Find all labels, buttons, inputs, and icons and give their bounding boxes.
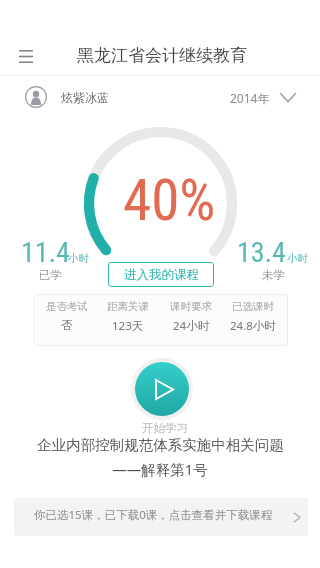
staticText: 未学: [262, 268, 285, 282]
button[interactable]: Menu: [10, 40, 42, 72]
staticText: 否: [61, 318, 73, 332]
staticText: 炫紫冰蓝: [61, 90, 109, 105]
staticText: 24小时: [173, 318, 210, 334]
button[interactable]: 进入我的课程: [108, 262, 214, 287]
button[interactable]: 开始学习: [131, 358, 193, 420]
staticText: 123天: [112, 318, 144, 334]
staticText: 11.4: [21, 236, 70, 269]
staticText: 进入我的课程: [124, 267, 199, 283]
staticText: 40%: [123, 167, 216, 234]
staticText: 13.4: [237, 236, 286, 269]
staticText: 24.8小时: [230, 318, 276, 334]
staticText: 已选课时: [232, 300, 274, 313]
button[interactable]: 炫紫冰蓝: [0, 76, 320, 118]
staticText: 小时: [68, 252, 89, 265]
staticText: ——解释第1号: [112, 459, 208, 479]
staticText: 企业内部控制规范体系实施中相关问题: [37, 436, 284, 454]
staticText: 小时: [287, 252, 308, 265]
staticText: 是否考试: [46, 300, 88, 313]
button[interactable]: 你已选15课，已下载0课，点击查看并下载课程: [14, 498, 308, 536]
staticText: 已学: [39, 268, 62, 282]
staticText: 黑龙江省会计继续教育: [77, 45, 247, 66]
staticText: 开始学习: [142, 421, 188, 435]
staticText: 课时要求: [170, 300, 212, 313]
button[interactable]: 企业内部控制规范体系实施中相关问题: [0, 436, 320, 479]
staticText: 你已选15课，已下载0课，点击查看并下载课程: [34, 507, 273, 523]
staticText: 距离关课: [107, 300, 149, 313]
staticText: 2014年: [230, 90, 270, 106]
